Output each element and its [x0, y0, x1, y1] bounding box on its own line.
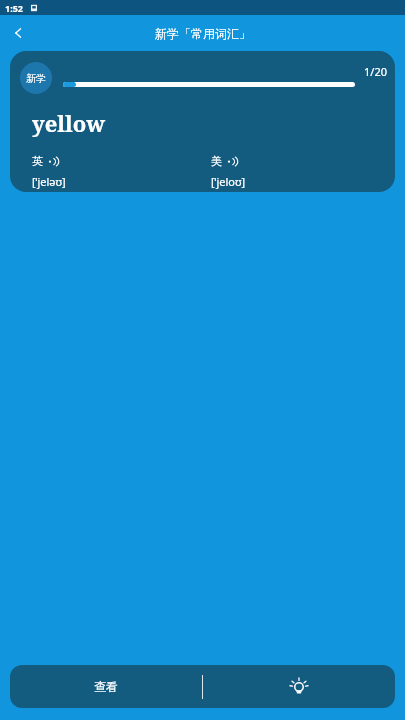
- button[interactable]: Play pronunciation: [227, 156, 238, 167]
- button[interactable]: Back: [0, 15, 38, 51]
- staticText: yellow: [32, 108, 106, 138]
- button[interactable]: Play pronunciation: [48, 156, 59, 167]
- button[interactable]: 查看: [10, 665, 202, 708]
- staticText: [ˈjeləʊ]: [32, 174, 66, 189]
- staticText: [ˈjeloʊ]: [211, 174, 246, 189]
- button[interactable]: Hint: [203, 665, 395, 708]
- staticText: 1:52: [5, 2, 23, 14]
- staticText: 1/20: [364, 64, 387, 79]
- staticText: 英: [32, 154, 43, 168]
- staticText: 美: [211, 154, 222, 168]
- staticText: 新学「常用词汇」: [155, 26, 251, 41]
- staticText: 查看: [94, 679, 118, 694]
- staticText: 新学: [26, 72, 46, 85]
- button[interactable]: 新学: [10, 51, 395, 192]
